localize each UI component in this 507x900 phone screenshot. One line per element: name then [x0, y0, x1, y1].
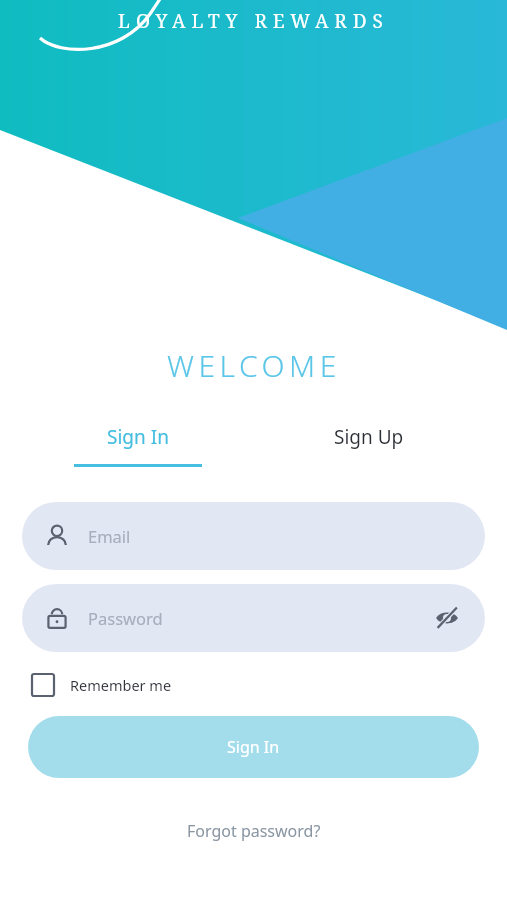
- staticText: Sign Up: [334, 424, 404, 450]
- button[interactable]: Show password: [429, 600, 465, 636]
- staticText: Sign In: [227, 736, 280, 758]
- button[interactable]: Sign In: [28, 716, 479, 778]
- button[interactable]: Email: [22, 502, 485, 570]
- button[interactable]: Forgot password?: [187, 820, 321, 842]
- button[interactable]: Sign Up: [253, 424, 485, 467]
- staticText: WELCOME: [167, 345, 341, 386]
- staticText: Email: [88, 525, 131, 547]
- staticText: Password: [88, 607, 163, 629]
- button[interactable]: Sign In: [22, 424, 253, 467]
- button[interactable]: Remember me: [32, 674, 172, 696]
- button[interactable]: Password: [22, 584, 485, 652]
- staticText: Remember me: [70, 675, 172, 695]
- staticText: Forgot password?: [187, 820, 321, 842]
- staticText: Sign In: [107, 424, 169, 450]
- staticText: LOYALTY REWARDS: [118, 8, 389, 34]
